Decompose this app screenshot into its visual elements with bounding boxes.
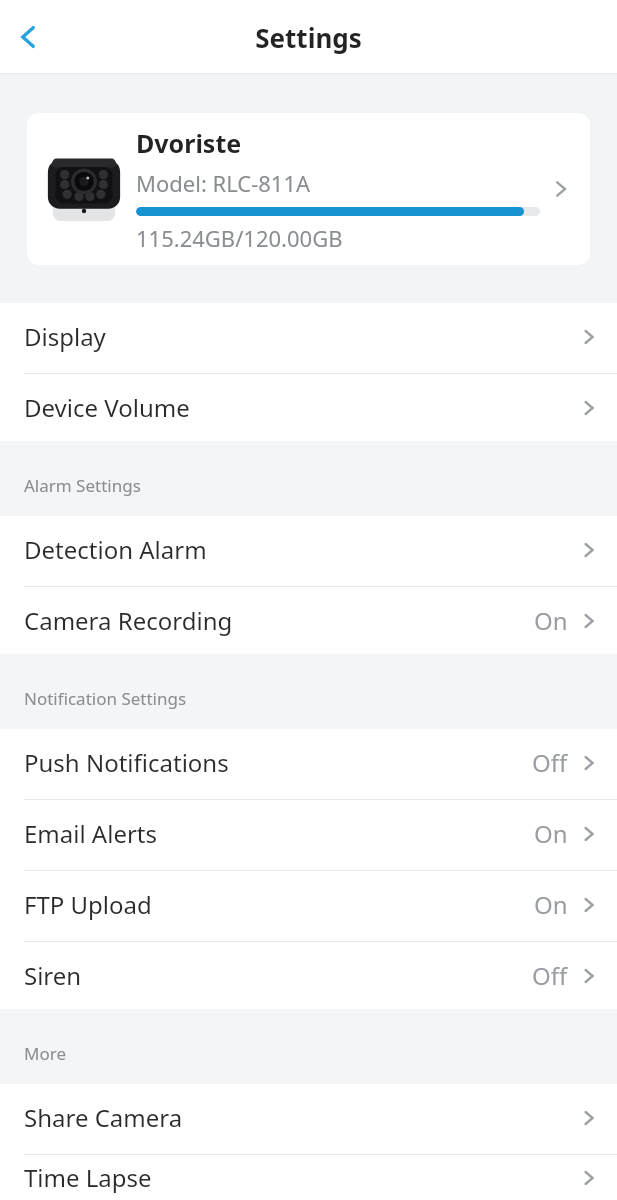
button[interactable]: Device Volume — [0, 374, 617, 441]
staticText: Time Lapse — [24, 1161, 579, 1194]
staticText: Off — [532, 746, 568, 779]
button[interactable]: Siren — [0, 942, 617, 1009]
staticText: Share Camera — [24, 1101, 579, 1134]
button[interactable]: Time Lapse — [0, 1155, 617, 1200]
staticText: On — [534, 604, 568, 637]
staticText: Email Alerts — [24, 817, 534, 850]
staticText: Dvoriste — [136, 126, 242, 160]
staticText: Display — [24, 320, 579, 353]
staticText: Settings — [0, 20, 617, 55]
button[interactable]: Email Alerts — [0, 800, 617, 871]
staticText: More — [24, 1042, 66, 1065]
staticText: FTP Upload — [24, 888, 534, 921]
staticText: Detection Alarm — [24, 533, 579, 566]
staticText: Model: RLC-811A — [136, 168, 311, 198]
button[interactable]: Push Notifications — [0, 729, 617, 800]
button[interactable]: Camera Recording — [0, 587, 617, 654]
button[interactable]: Dvoriste — [27, 113, 590, 265]
staticText: Push Notifications — [24, 746, 532, 779]
button[interactable]: FTP Upload — [0, 871, 617, 942]
staticText: Notification Settings — [24, 687, 187, 710]
staticText: Off — [532, 959, 568, 992]
staticText: Device Volume — [24, 391, 579, 424]
button[interactable]: Share Camera — [0, 1084, 617, 1155]
button[interactable]: Detection Alarm — [0, 516, 617, 587]
button[interactable]: Display — [0, 303, 617, 374]
staticText: 115.24GB/120.00GB — [136, 223, 343, 253]
staticText: Alarm Settings — [24, 474, 141, 497]
staticText: On — [534, 817, 568, 850]
staticText: Camera Recording — [24, 604, 534, 637]
staticText: On — [534, 888, 568, 921]
button[interactable]: Back — [0, 9, 56, 65]
staticText: Siren — [24, 959, 532, 992]
